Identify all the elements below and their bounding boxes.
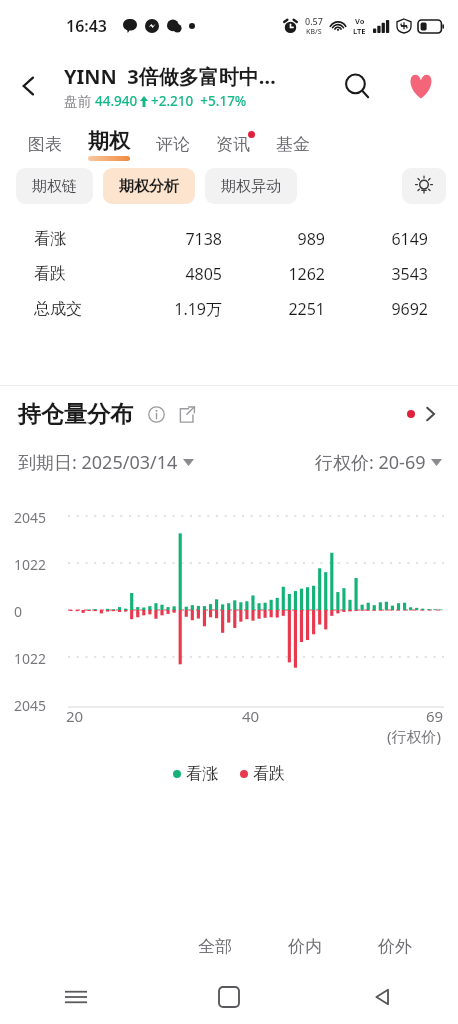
button[interactable]: Tips xyxy=(402,168,446,204)
button[interactable]: Back xyxy=(6,63,52,109)
button[interactable]: Back xyxy=(305,970,458,1024)
staticText: 持仓量分布 xyxy=(18,400,133,429)
staticText: 价内 xyxy=(288,936,322,957)
button[interactable]: Search xyxy=(334,63,380,109)
staticText: 期权 xyxy=(88,128,130,154)
staticText: 6149 xyxy=(325,228,428,250)
staticText: 行权价: 20-69 xyxy=(315,450,426,475)
staticText: 总成交 xyxy=(34,299,118,319)
staticText: KB/S xyxy=(306,27,322,37)
button[interactable]: 到期日: 2025/03/14 xyxy=(18,446,194,479)
staticText: 2251 xyxy=(222,298,325,320)
staticText: 69 xyxy=(426,706,444,726)
button[interactable]: 行权价: 20-69 xyxy=(315,446,442,479)
staticText: 1.19万 xyxy=(118,298,222,320)
button[interactable]: 期权链 xyxy=(16,168,93,204)
button[interactable]: Share xyxy=(173,401,199,427)
staticText: 2045 xyxy=(14,508,47,527)
staticText: 期权分析 xyxy=(119,177,179,196)
staticText: 9692 xyxy=(325,298,428,320)
staticText: 1262 xyxy=(222,263,325,285)
button[interactable]: Home xyxy=(152,970,305,1024)
staticText: 看跌 xyxy=(253,764,285,784)
staticText: 1022 xyxy=(14,555,47,574)
staticText: 盘前 xyxy=(64,92,95,110)
staticText: Vo xyxy=(355,16,365,26)
staticText: 989 xyxy=(222,228,325,250)
staticText: 2045 xyxy=(14,696,47,715)
staticText: 看涨 xyxy=(186,764,218,784)
staticText: 资讯 xyxy=(216,134,250,155)
button[interactable]: 资讯 xyxy=(206,130,260,159)
button[interactable]: Recents xyxy=(0,970,152,1024)
staticText: 期权链 xyxy=(32,177,77,196)
staticText: +2.210 +5.17% xyxy=(151,92,247,110)
button[interactable]: 图表 xyxy=(18,130,72,159)
button[interactable]: 期权 xyxy=(78,124,140,165)
staticText: (行权价) xyxy=(387,726,442,746)
staticText: LTE xyxy=(353,26,366,36)
button[interactable]: 期权分析 xyxy=(103,168,195,204)
staticText: 40 xyxy=(242,706,260,726)
staticText: 价外 xyxy=(378,936,412,957)
staticText: 3543 xyxy=(325,263,428,285)
button[interactable]: Favorite xyxy=(396,61,446,111)
staticText: 基金 xyxy=(276,134,310,155)
staticText: 图表 xyxy=(28,134,62,155)
button[interactable]: 价内 xyxy=(260,922,350,970)
button[interactable]: 期权异动 xyxy=(205,168,297,204)
staticText: 44.940 xyxy=(95,92,138,110)
button[interactable]: 评论 xyxy=(146,130,200,159)
staticText: 到期日: 2025/03/14 xyxy=(18,450,178,475)
staticText: 全部 xyxy=(198,936,232,957)
button[interactable]: More xyxy=(401,399,442,429)
staticText: 评论 xyxy=(156,134,190,155)
staticText: 7138 xyxy=(118,228,222,250)
button[interactable]: 基金 xyxy=(266,130,320,159)
staticText: 1022 xyxy=(14,649,47,668)
staticText: 0.57 xyxy=(305,15,323,27)
button[interactable]: 价外 xyxy=(350,922,440,970)
staticText: 16:43 xyxy=(66,15,108,37)
button[interactable]: 全部 xyxy=(170,922,260,970)
staticText: 0 xyxy=(14,602,23,621)
staticText: 期权异动 xyxy=(221,177,281,196)
staticText: 看跌 xyxy=(34,264,118,284)
staticText: 看涨 xyxy=(34,229,118,249)
staticText: 20 xyxy=(66,706,84,726)
staticText: 4805 xyxy=(118,263,222,285)
button[interactable]: Info xyxy=(143,401,169,427)
staticText: YINN 3倍做多富时中… xyxy=(64,63,276,90)
